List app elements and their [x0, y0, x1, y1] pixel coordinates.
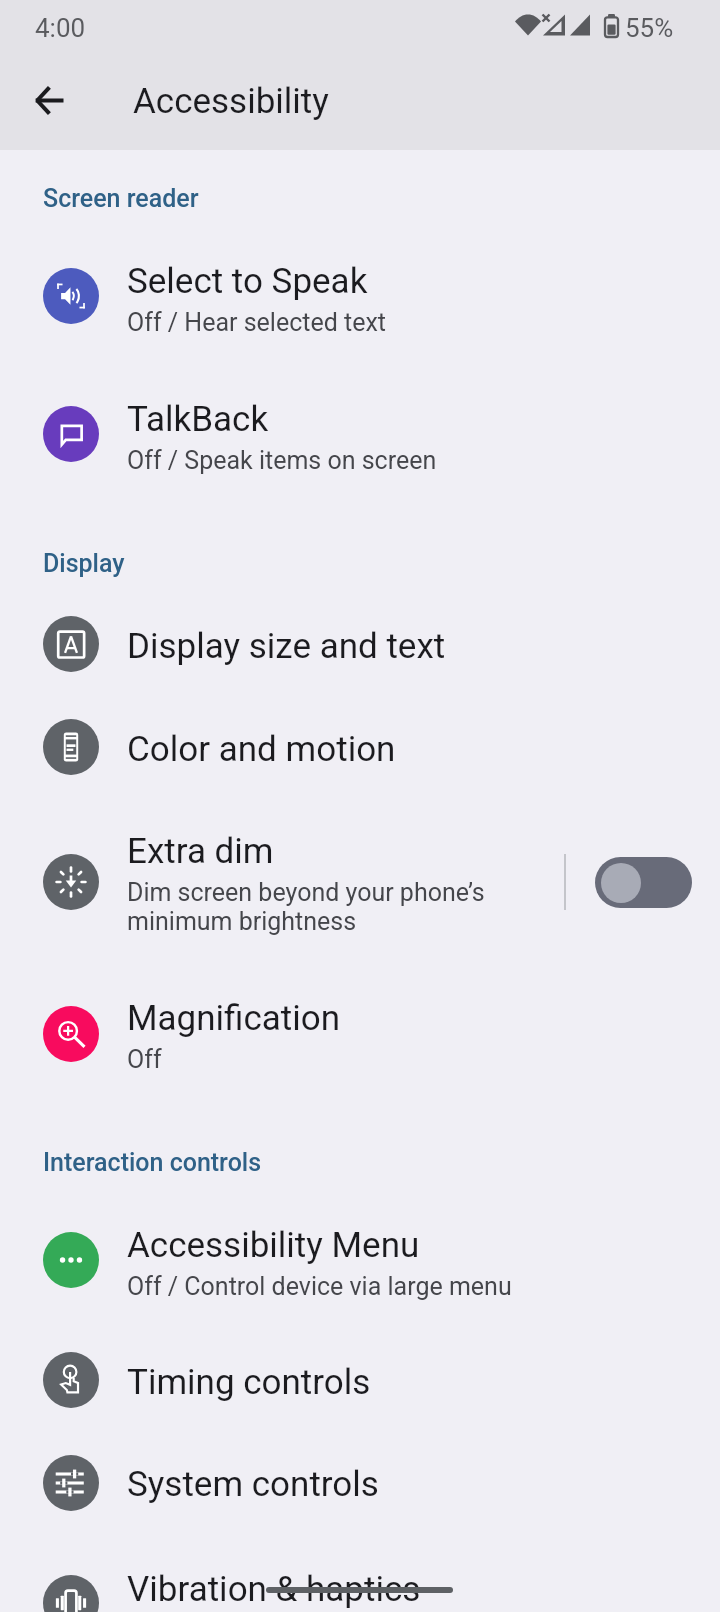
- staticText: Accessibility Menu: [127, 1225, 420, 1266]
- staticText: Vibration & haptics: [127, 1569, 421, 1610]
- button[interactable]: Extra dim: [0, 826, 720, 939]
- staticText: Off / Hear selected text: [127, 308, 386, 337]
- staticText: Timing controls: [127, 1362, 371, 1403]
- button[interactable]: Accessibility Menu: [0, 1212, 720, 1308]
- button[interactable]: Magnification: [0, 986, 720, 1082]
- staticText: System controls: [127, 1464, 379, 1505]
- staticText: Off: [127, 1045, 162, 1074]
- button[interactable]: Vibration & haptics: [0, 1555, 720, 1612]
- staticText: Magnification: [127, 998, 341, 1039]
- button[interactable]: Color and motion: [0, 707, 720, 787]
- button[interactable]: TalkBack: [0, 386, 720, 482]
- button[interactable]: Display size and text: [0, 604, 720, 684]
- button[interactable]: Extra dim off: [595, 857, 692, 908]
- button[interactable]: Navigate up: [14, 64, 86, 136]
- staticText: Extra dim: [127, 831, 274, 872]
- staticText: 4:00: [35, 13, 86, 43]
- staticText: Interaction controls: [43, 1148, 262, 1177]
- staticText: Accessibility: [133, 81, 329, 122]
- staticText: Select to Speak: [127, 261, 368, 302]
- staticText: Display: [43, 549, 125, 578]
- staticText: Screen reader: [43, 184, 199, 213]
- button[interactable]: Select to Speak: [0, 249, 720, 345]
- button[interactable]: Timing controls: [0, 1340, 720, 1420]
- staticText: Color and motion: [127, 729, 396, 770]
- staticText: Off / Control device via large menu: [127, 1272, 512, 1301]
- staticText: Display size and text: [127, 626, 446, 667]
- staticText: TalkBack: [127, 399, 269, 440]
- staticText: Off / Speak items on screen: [127, 446, 437, 475]
- staticText: Dim screen beyond your phone’s minimum b…: [127, 878, 485, 936]
- staticText: 55%: [625, 13, 674, 43]
- button[interactable]: System controls: [0, 1443, 720, 1523]
